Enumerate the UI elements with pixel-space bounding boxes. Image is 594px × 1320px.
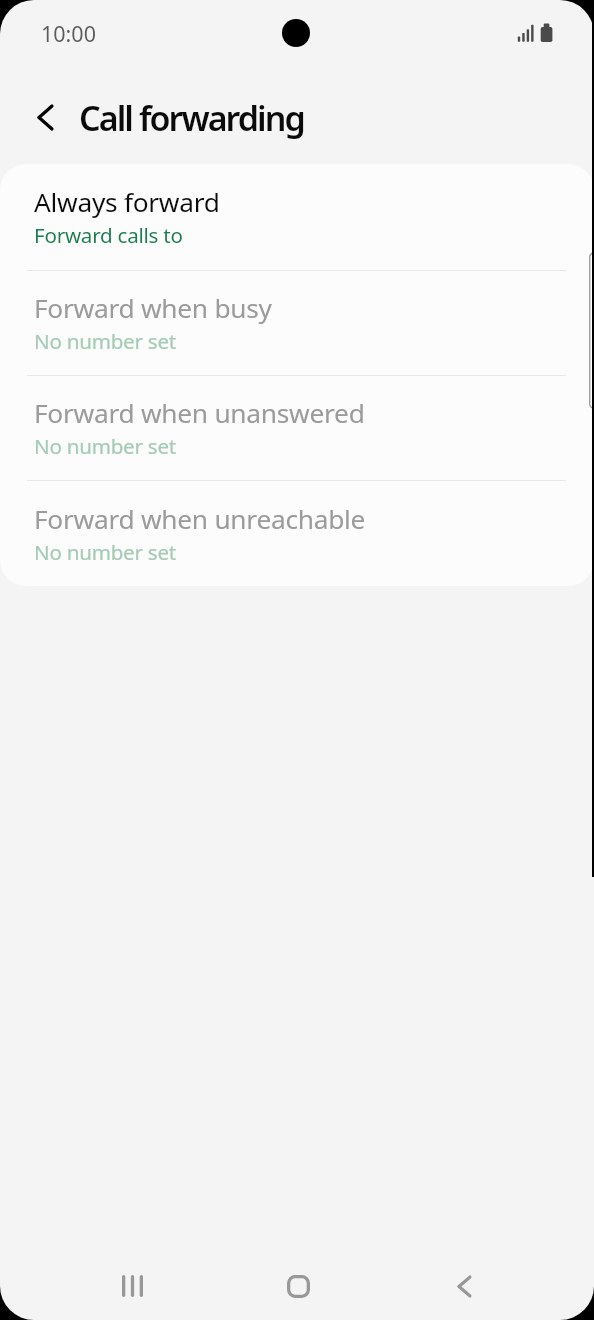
button[interactable]: Home bbox=[250, 1248, 346, 1320]
button[interactable]: Recent apps bbox=[84, 1248, 180, 1320]
staticText: Forward calls to bbox=[34, 221, 183, 249]
staticText: No number set bbox=[34, 432, 176, 460]
staticText: Call forwarding bbox=[79, 95, 304, 141]
button[interactable]: Forward when busy bbox=[0, 270, 594, 376]
staticText: No number set bbox=[34, 538, 176, 566]
button[interactable]: Forward when unanswered bbox=[0, 375, 594, 481]
button[interactable]: Forward when unreachable bbox=[0, 481, 594, 586]
button[interactable]: Navigate up bbox=[17, 89, 73, 145]
staticText: Forward when busy bbox=[34, 290, 272, 326]
staticText: Forward when unanswered bbox=[34, 395, 365, 431]
staticText: 10:00 bbox=[41, 19, 96, 48]
staticText: No number set bbox=[34, 327, 176, 355]
staticText: Forward when unreachable bbox=[34, 501, 366, 537]
button[interactable]: Back bbox=[416, 1248, 512, 1320]
button[interactable]: Always forward bbox=[0, 164, 594, 270]
staticText: Always forward bbox=[34, 184, 220, 220]
